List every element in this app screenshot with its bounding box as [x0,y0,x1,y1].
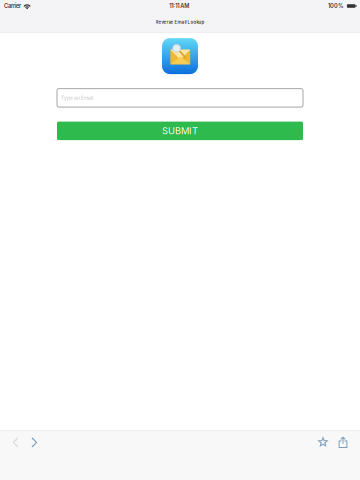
button[interactable]: SUBMIT [57,122,303,140]
button[interactable]: Share [333,431,353,453]
button[interactable]: Back [5,431,25,453]
staticText: Carrier [4,3,21,9]
staticText: Type an Email [61,95,93,101]
staticText: SUBMIT [162,125,198,136]
staticText: Reverse Email Lookup [155,19,204,25]
staticText: 100% [328,3,344,9]
button[interactable]: Type an Email [57,89,303,107]
button[interactable]: Bookmark [313,431,333,453]
button[interactable]: Forward [25,431,45,453]
staticText: 11:11 AM [169,3,189,9]
